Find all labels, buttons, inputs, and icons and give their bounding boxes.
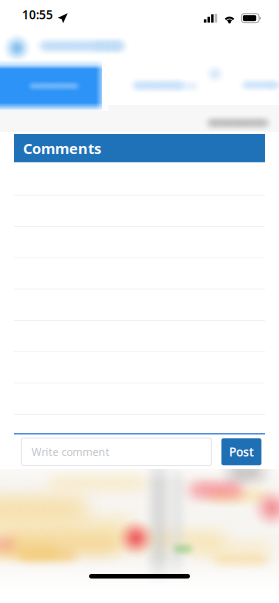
button[interactable]: Write comment (21, 438, 211, 465)
staticText: 10:55 (22, 7, 53, 22)
button[interactable]: Post (221, 438, 261, 465)
staticText: Write comment (31, 445, 109, 459)
staticText: Comments (23, 138, 101, 158)
staticText: Post (229, 444, 254, 460)
